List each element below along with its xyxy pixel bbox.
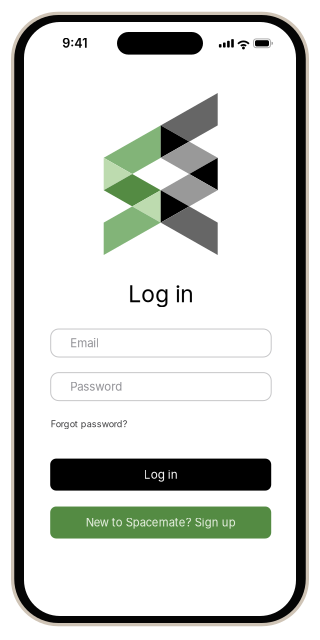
staticText: Email [70, 336, 99, 350]
button[interactable]: New to Spacemate? Sign up [50, 506, 271, 538]
staticText: Log in [128, 280, 193, 308]
button[interactable]: Log in [50, 459, 271, 491]
staticText: Password [70, 380, 122, 394]
button[interactable]: Forgot password? [51, 417, 171, 431]
staticText: 9:41 [62, 36, 87, 51]
staticText: Forgot password? [51, 418, 128, 429]
staticText: New to Spacemate? Sign up [86, 516, 236, 529]
staticText: Log in [144, 467, 178, 482]
